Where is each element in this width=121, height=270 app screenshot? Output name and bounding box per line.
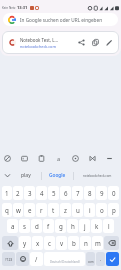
staticText: j bbox=[84, 222, 86, 230]
staticText: z bbox=[64, 206, 67, 214]
staticText: l bbox=[108, 222, 110, 230]
button[interactable]: o bbox=[96, 203, 107, 217]
button[interactable]: . bbox=[96, 252, 105, 266]
button[interactable]: 5 bbox=[48, 186, 59, 200]
staticText: q bbox=[5, 206, 9, 214]
button[interactable]: q bbox=[2, 203, 12, 217]
button[interactable] bbox=[72, 155, 79, 162]
button[interactable]: a bbox=[55, 155, 62, 162]
staticText: h bbox=[71, 222, 75, 230]
staticText: Notebook Test, L... bbox=[20, 37, 59, 43]
button[interactable] bbox=[16, 252, 29, 266]
staticText: f bbox=[47, 222, 50, 230]
button[interactable]: Notebook Test, L... bbox=[2, 31, 119, 54]
staticText: r bbox=[40, 206, 43, 214]
button[interactable] bbox=[89, 155, 96, 162]
button[interactable] bbox=[2, 236, 18, 250]
button[interactable] bbox=[92, 39, 99, 46]
button[interactable]: 1 bbox=[2, 186, 12, 200]
staticText: t bbox=[52, 206, 55, 214]
button[interactable]: / bbox=[30, 252, 43, 266]
staticText: 3 bbox=[28, 189, 32, 197]
button[interactable]: h bbox=[67, 219, 78, 233]
staticText: g bbox=[59, 222, 63, 230]
button[interactable] bbox=[78, 39, 85, 46]
staticText: 1 bbox=[5, 189, 9, 197]
button[interactable]: k bbox=[91, 219, 102, 233]
button[interactable]: t bbox=[48, 203, 59, 217]
staticText: / bbox=[35, 255, 38, 263]
button[interactable]: 2 bbox=[13, 186, 23, 200]
staticText: ?123 bbox=[5, 257, 13, 262]
button[interactable] bbox=[21, 155, 28, 162]
button[interactable] bbox=[106, 155, 113, 162]
button[interactable]: 7 bbox=[72, 186, 83, 200]
button[interactable]: p bbox=[108, 203, 119, 217]
button[interactable]: f bbox=[43, 219, 54, 233]
button[interactable]: b bbox=[68, 236, 79, 250]
staticText: Deutsch (Deutschland) bbox=[50, 260, 80, 264]
button[interactable]: w bbox=[13, 203, 23, 217]
button[interactable]: 8 bbox=[84, 186, 95, 200]
button[interactable]: s bbox=[19, 219, 30, 233]
staticText: play bbox=[21, 172, 31, 179]
staticText: k bbox=[95, 222, 99, 230]
staticText: notebookcheck.com bbox=[20, 44, 56, 49]
staticText: u bbox=[76, 206, 80, 214]
staticText: com bbox=[88, 260, 94, 264]
staticText: p bbox=[112, 206, 116, 214]
staticText: o bbox=[100, 206, 104, 214]
button[interactable]: j bbox=[79, 219, 90, 233]
staticText: e bbox=[28, 206, 32, 214]
button[interactable]: 9 bbox=[96, 186, 107, 200]
staticText: 6 bbox=[64, 189, 68, 197]
button[interactable]: Google bbox=[42, 168, 73, 183]
button[interactable]: c bbox=[44, 236, 55, 250]
button[interactable] bbox=[38, 155, 45, 162]
staticText: 5 bbox=[52, 189, 56, 197]
staticText: In Google suchen oder URL eingeben bbox=[20, 17, 103, 23]
button[interactable]: 3 bbox=[24, 186, 35, 200]
staticText: y bbox=[23, 239, 27, 247]
button[interactable] bbox=[104, 236, 119, 250]
button[interactable]: play bbox=[11, 168, 41, 183]
button[interactable]: n bbox=[80, 236, 91, 250]
button[interactable]: a bbox=[7, 219, 18, 233]
button[interactable]: g bbox=[55, 219, 66, 233]
button[interactable] bbox=[106, 252, 119, 266]
staticText: Google bbox=[49, 172, 66, 179]
button[interactable]: z bbox=[60, 203, 71, 217]
button[interactable]: l bbox=[103, 219, 114, 233]
staticText: a bbox=[11, 222, 15, 230]
button[interactable]: ?123 bbox=[2, 252, 15, 266]
button[interactable]: d bbox=[31, 219, 42, 233]
staticText: notebookcheck.com bbox=[83, 174, 112, 178]
button[interactable]: In Google suchen oder URL eingeben bbox=[3, 13, 118, 26]
button[interactable] bbox=[106, 39, 113, 46]
button[interactable]: i bbox=[84, 203, 95, 217]
button[interactable]: x bbox=[32, 236, 43, 250]
staticText: 4 bbox=[40, 189, 44, 197]
staticText: c bbox=[48, 239, 51, 247]
staticText: x bbox=[36, 239, 40, 247]
staticText: n bbox=[84, 239, 88, 247]
staticText: w bbox=[16, 206, 21, 214]
button[interactable]: 0 bbox=[108, 186, 119, 200]
button[interactable]: com bbox=[86, 252, 95, 266]
button[interactable]: 4 bbox=[36, 186, 47, 200]
button[interactable] bbox=[4, 172, 11, 179]
button[interactable]: y bbox=[19, 236, 31, 250]
button[interactable]: u bbox=[72, 203, 83, 217]
button[interactable]: Deutsch (Deutschland) bbox=[44, 252, 85, 266]
button[interactable]: v bbox=[56, 236, 67, 250]
button[interactable] bbox=[4, 155, 11, 162]
staticText: 7 bbox=[76, 189, 80, 197]
button[interactable]: e bbox=[24, 203, 35, 217]
staticText: a bbox=[57, 155, 61, 162]
button[interactable]: m bbox=[92, 236, 103, 250]
button[interactable]: r bbox=[36, 203, 47, 217]
staticText: 0 bbox=[112, 189, 116, 197]
staticText: d bbox=[35, 222, 39, 230]
button[interactable]: notebookcheck.com bbox=[74, 168, 121, 183]
button[interactable]: 6 bbox=[60, 186, 71, 200]
